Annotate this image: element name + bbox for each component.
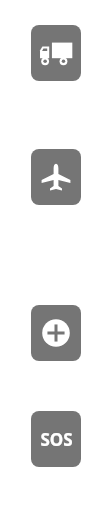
staticText: SOS bbox=[40, 428, 73, 451]
button[interactable]: Add bbox=[31, 305, 81, 361]
button[interactable]: Delivery truck bbox=[31, 25, 81, 81]
button[interactable]: SOS bbox=[31, 411, 81, 467]
button[interactable]: Flight bbox=[31, 149, 81, 205]
